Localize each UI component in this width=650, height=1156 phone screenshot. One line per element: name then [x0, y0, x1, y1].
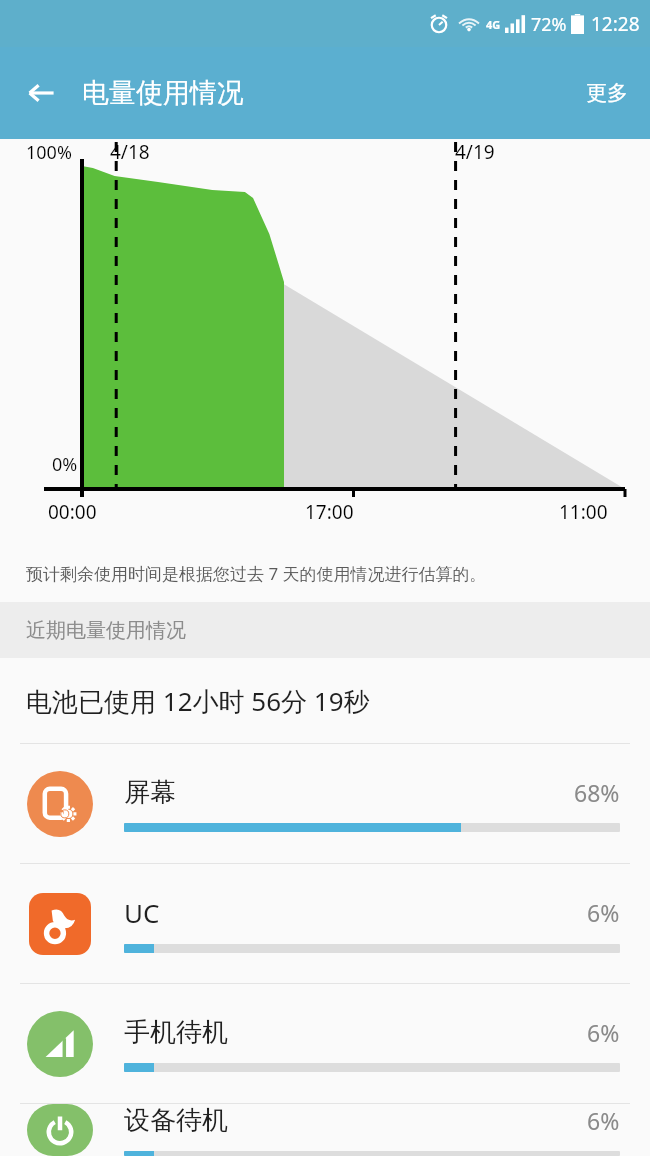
button[interactable]: 设备待机 [0, 1104, 650, 1156]
staticText: 设备待机 [124, 1104, 228, 1137]
button[interactable]: Back [18, 70, 64, 116]
staticText: 68% [574, 777, 620, 808]
staticText: 6% [587, 1017, 620, 1048]
staticText: 预计剩余使用时间是根据您过去 7 天的使用情况进行估算的。 [26, 562, 487, 585]
staticText: 0% [52, 452, 78, 477]
staticText: 手机待机 [124, 1016, 228, 1049]
staticText: UC [124, 895, 160, 930]
staticText: 12:28 [591, 11, 640, 37]
staticText: 更多 [586, 80, 628, 106]
button[interactable]: 更多 [564, 66, 650, 120]
staticText: 电量使用情况 [82, 76, 244, 110]
staticText: 4G [486, 17, 501, 32]
staticText: 屏幕 [124, 776, 176, 809]
staticText: 4/18 [110, 139, 150, 165]
button[interactable]: 屏幕 [0, 744, 650, 863]
button[interactable]: 手机待机 [0, 984, 650, 1103]
staticText: 00:00 [48, 499, 97, 525]
staticText: 17:00 [305, 499, 354, 525]
staticText: 4/19 [455, 139, 495, 165]
staticText: 6% [587, 1105, 620, 1136]
button[interactable]: UC [0, 864, 650, 983]
staticText: 72% [531, 12, 567, 37]
staticText: 6% [587, 897, 620, 928]
staticText: 近期电量使用情况 [26, 618, 186, 643]
staticText: 电池已使用 12小时 56分 19秒 [26, 683, 370, 719]
staticText: 11:00 [559, 499, 608, 525]
staticText: 100% [26, 140, 72, 165]
